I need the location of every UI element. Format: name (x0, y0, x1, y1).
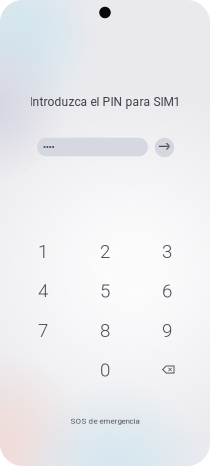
staticText: 7 (38, 320, 48, 341)
button[interactable]: Borrar (137, 350, 199, 389)
button[interactable]: 1 (12, 232, 74, 271)
staticText: Introduzca el PIN para SIM1 (29, 95, 180, 109)
staticText: 3 (162, 241, 172, 262)
button[interactable]: 8 (74, 311, 136, 350)
staticText: 6 (162, 280, 172, 302)
button[interactable]: 4 (12, 271, 74, 310)
button[interactable]: 7 (12, 311, 74, 350)
staticText: 4 (38, 280, 48, 302)
button[interactable]: 2 (74, 232, 136, 271)
staticText: 8 (100, 320, 110, 341)
button[interactable]: 5 (74, 271, 136, 310)
staticText: 9 (162, 320, 172, 341)
staticText: SOS de emergencia (70, 416, 139, 426)
button[interactable]: 3 (136, 232, 198, 271)
button[interactable]: 6 (136, 271, 198, 310)
staticText: 5 (100, 280, 110, 302)
button[interactable]: SOS de emergencia (50, 410, 160, 432)
button[interactable]: Enviar PIN (155, 138, 174, 157)
staticText: 1 (38, 241, 48, 262)
button[interactable]: 0 (74, 350, 136, 389)
button[interactable]: 9 (136, 311, 198, 350)
staticText: 2 (100, 241, 110, 262)
staticText: 0 (100, 359, 110, 381)
